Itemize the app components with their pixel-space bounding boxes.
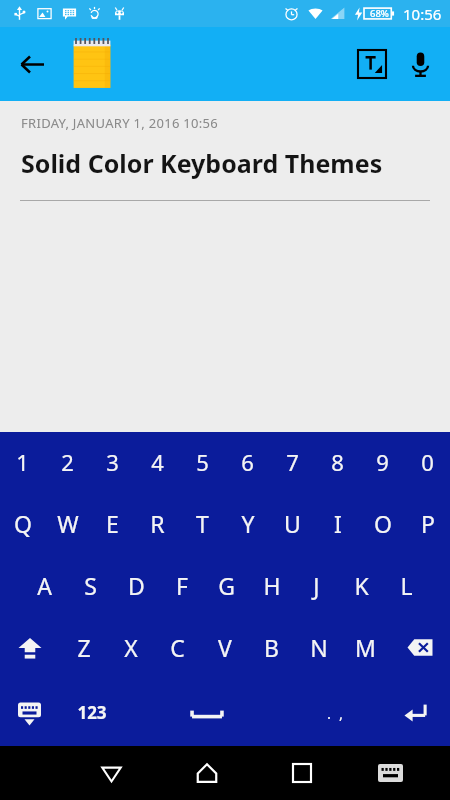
staticText: X: [124, 632, 138, 663]
button[interactable]: 1: [0, 432, 45, 492]
button[interactable]: O: [360, 492, 405, 554]
staticText: D: [128, 570, 145, 601]
staticText: 4: [151, 447, 164, 477]
staticText: FRIDAY, JANUARY 1, 2016 10:56: [21, 114, 219, 132]
staticText: H: [263, 570, 281, 601]
staticText: 0: [421, 447, 434, 477]
button[interactable]: H: [249, 554, 294, 616]
button[interactable]: 7: [270, 432, 315, 492]
staticText: . ,: [327, 703, 343, 723]
staticText: 3: [106, 447, 119, 477]
button[interactable]: Hide keyboard: [0, 679, 58, 746]
staticText: 68%: [370, 7, 389, 20]
staticText: P: [421, 508, 435, 539]
button[interactable]: Home: [159, 746, 254, 800]
staticText: N: [310, 632, 328, 663]
staticText: A: [37, 570, 52, 601]
staticText: 9: [376, 447, 389, 477]
button[interactable]: G: [204, 554, 249, 616]
button[interactable]: Space: [126, 679, 288, 746]
button[interactable]: 123: [58, 679, 126, 746]
button[interactable]: 2: [45, 432, 90, 492]
button[interactable]: D: [113, 554, 159, 616]
staticText: M: [355, 632, 376, 663]
staticText: I: [334, 508, 342, 539]
staticText: 123: [77, 701, 107, 724]
staticText: Solid Color Keyboard Themes: [21, 146, 383, 180]
staticText: 5: [196, 447, 209, 477]
button[interactable]: I: [315, 492, 360, 554]
staticText: Z: [77, 632, 91, 663]
staticText: 2: [61, 447, 74, 477]
staticText: C: [170, 632, 185, 663]
button[interactable]: B: [248, 616, 295, 679]
button[interactable]: 6: [225, 432, 270, 492]
staticText: 7: [286, 447, 299, 477]
staticText: 10:56: [403, 4, 442, 24]
staticText: O: [374, 508, 392, 539]
button[interactable]: C: [154, 616, 201, 679]
staticText: R: [150, 508, 165, 539]
button[interactable]: 5: [180, 432, 225, 492]
button[interactable]: P: [405, 492, 450, 554]
button[interactable]: Back: [64, 746, 159, 800]
button[interactable]: Switch keyboard: [349, 746, 431, 800]
staticText: Y: [241, 508, 255, 539]
button[interactable]: Z: [60, 616, 107, 679]
button[interactable]: J: [294, 554, 339, 616]
button[interactable]: N: [295, 616, 342, 679]
button[interactable]: Y: [225, 492, 270, 554]
staticText: E: [106, 508, 119, 539]
button[interactable]: 4: [135, 432, 180, 492]
button[interactable]: Backspace: [389, 616, 450, 679]
staticText: B: [264, 632, 279, 663]
button[interactable]: Q: [0, 492, 45, 554]
button[interactable]: L: [384, 554, 429, 616]
button[interactable]: Text formatting: [348, 40, 396, 88]
button[interactable]: 0: [405, 432, 450, 492]
button[interactable]: 8: [315, 432, 360, 492]
button[interactable]: W: [45, 492, 90, 554]
button[interactable]: E: [90, 492, 135, 554]
staticText: S: [84, 570, 97, 601]
button[interactable]: 9: [360, 432, 405, 492]
button[interactable]: 3: [90, 432, 135, 492]
button[interactable]: R: [135, 492, 180, 554]
button[interactable]: Back: [8, 40, 56, 88]
staticText: F: [176, 570, 188, 601]
button[interactable]: . ,: [288, 679, 382, 746]
staticText: L: [400, 570, 413, 601]
button[interactable]: X: [107, 616, 154, 679]
button[interactable]: Recents: [254, 746, 349, 800]
button[interactable]: S: [67, 554, 113, 616]
staticText: G: [218, 570, 235, 601]
staticText: 6: [241, 447, 254, 477]
staticText: U: [284, 508, 301, 539]
button[interactable]: Enter: [382, 679, 450, 746]
staticText: Q: [14, 508, 32, 539]
button[interactable]: V: [201, 616, 248, 679]
staticText: K: [354, 570, 369, 601]
button[interactable]: T: [180, 492, 225, 554]
button[interactable]: A: [21, 554, 67, 616]
button[interactable]: F: [159, 554, 204, 616]
button[interactable]: Shift: [0, 616, 60, 679]
staticText: 1: [16, 447, 29, 477]
button[interactable]: U: [270, 492, 315, 554]
staticText: T: [196, 508, 209, 539]
button[interactable]: K: [339, 554, 384, 616]
button[interactable]: Voice input: [396, 40, 444, 88]
staticText: V: [218, 632, 232, 663]
staticText: W: [57, 508, 79, 539]
staticText: J: [313, 570, 320, 601]
button[interactable]: M: [342, 616, 389, 679]
staticText: 8: [331, 447, 344, 477]
